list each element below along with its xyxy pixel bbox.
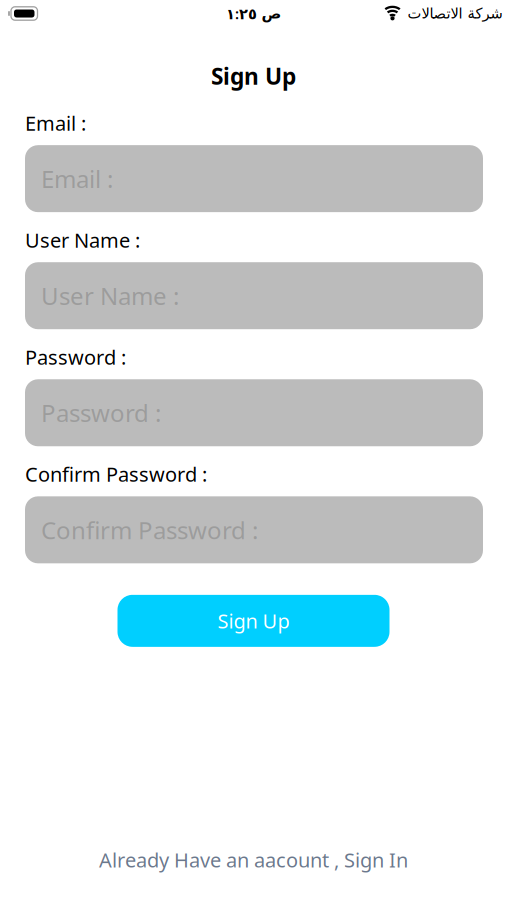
staticText: Already Have an aacount , Sign In	[99, 846, 408, 873]
staticText: Sign Up	[217, 608, 289, 634]
staticText: Sign Up	[211, 61, 296, 91]
staticText: Confirm Password :	[25, 461, 207, 487]
staticText: User Name :	[25, 227, 140, 253]
button[interactable]: Password :	[25, 379, 483, 446]
staticText: ١:٢٥	[226, 4, 257, 23]
staticText: Password :	[41, 397, 161, 429]
staticText: ص	[261, 5, 281, 22]
button[interactable]: User Name :	[25, 262, 483, 329]
staticText: Email :	[25, 110, 86, 136]
button[interactable]: Already Have an aacount , Sign In	[99, 846, 408, 873]
staticText: Confirm Password :	[41, 514, 258, 546]
button[interactable]: Email :	[25, 145, 483, 212]
button[interactable]: Sign Up	[117, 595, 389, 647]
staticText: شركة الاتصالات	[407, 5, 502, 22]
staticText: Password :	[25, 344, 126, 370]
staticText: User Name :	[41, 280, 179, 312]
staticText: Email :	[41, 163, 113, 195]
button[interactable]: Confirm Password :	[25, 496, 483, 563]
